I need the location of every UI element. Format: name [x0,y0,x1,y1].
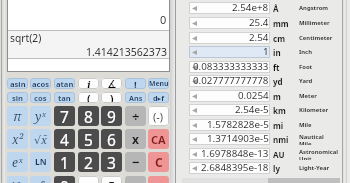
staticText: 1 [60,152,69,172]
button[interactable]: 5 [78,129,99,149]
button[interactable]: 0 [54,176,75,183]
staticText: eˣ [12,154,23,170]
button[interactable]: yˣ [30,106,51,126]
button[interactable]: 1.3714903e-5 [189,133,270,145]
button[interactable]: acos [30,78,51,89]
button[interactable]: (-) [148,106,169,126]
button[interactable]: x [125,129,146,149]
button[interactable]: ÷ [125,106,146,126]
button[interactable]: 4 [54,129,75,149]
button[interactable]: π [7,106,28,126]
button[interactable]: i [78,78,99,89]
staticText: Foot [299,63,313,71]
button[interactable]: 3 [101,152,122,172]
button[interactable]: eˣ [7,152,28,172]
button[interactable]: 2.6848395e-18 [189,162,270,174]
staticText: atan [56,79,74,89]
staticText: ÷ [132,107,140,125]
button[interactable]: 9 [101,106,122,126]
button[interactable]: 1.6978848e-13 [189,148,270,160]
staticText: 0.0254 [238,89,269,101]
button[interactable]: 1 [54,152,75,172]
staticText: 25.4 [249,16,269,28]
button[interactable]: 1 [189,46,270,58]
staticText: √x̅ [34,132,48,147]
button[interactable]: + [125,176,146,183]
staticText: i [87,78,91,89]
button[interactable]: 2.54e-5 [189,104,270,116]
button[interactable]: ∡ [101,78,122,89]
staticText: AU [273,149,285,160]
button[interactable]: Menu [148,78,169,89]
staticText: ly [273,163,280,174]
button[interactable]: = [148,176,169,183]
button[interactable]: . [78,176,99,183]
button[interactable]: 7 [54,106,75,126]
button[interactable]: 1.5782828e-5 [189,119,270,131]
button[interactable]: d▸f [148,92,169,103]
button[interactable]: 0.0254 [189,90,270,102]
button[interactable]: 2 [78,152,99,172]
staticText: E [108,178,115,183]
staticText: 1.3714903e-5 [207,132,269,144]
staticText: x² [12,131,24,147]
staticText: 7 [60,106,69,126]
staticText: cos [34,93,47,103]
button[interactable]: 25.4 [189,17,270,29]
staticText: 6 [107,129,116,149]
staticText: Mile [299,121,312,129]
staticText: Astronomical Unit [299,148,339,160]
button[interactable]: C [148,152,169,172]
button[interactable]: 2.54e+8 [189,2,270,14]
staticText: 2.54 [249,31,269,43]
button[interactable]: 8 [78,106,99,126]
staticText: 9 [107,106,116,126]
button[interactable]: Ans [125,92,146,103]
staticText: tan [58,93,71,103]
button[interactable]: LN [30,152,51,172]
staticText: in [273,47,281,58]
button[interactable]: 0.083333333333 [189,61,270,73]
staticText: Yard [299,77,313,85]
staticText: 2.54e-5 [235,103,269,115]
staticText: π [13,107,22,125]
staticText: CA [151,132,166,147]
button[interactable]: cos [30,92,51,103]
button[interactable]: ! [125,78,146,89]
staticText: 5 [84,129,93,149]
staticText: 1.5782828e-5 [207,118,269,130]
staticText: sin [12,93,24,103]
staticText: Kilometer [299,106,329,114]
staticText: Å [273,3,279,14]
button[interactable]: sin [7,92,28,103]
button[interactable]: √x̅ [30,129,51,149]
staticText: 0 [160,12,167,27]
button[interactable]: f [30,176,51,183]
button[interactable]: E [101,176,122,183]
button[interactable]: 2.54 [189,32,270,44]
staticText: acos [32,79,50,89]
button[interactable]: ) [101,92,122,103]
staticText: C [155,154,163,170]
button[interactable]: − [125,152,146,172]
staticText: 0 [60,176,69,183]
staticText: asin [10,79,26,89]
staticText: Light-Year [299,164,330,172]
staticText: yˣ [35,108,46,124]
staticText: ( [87,92,91,103]
button[interactable]: ( [78,92,99,103]
button[interactable]: 10ˣ [7,176,28,183]
button[interactable]: 0.027777777778 [189,75,270,87]
button[interactable]: 6 [101,129,122,149]
staticText: 1.414213562373 [86,45,167,59]
button[interactable]: x² [7,129,28,149]
button[interactable]: atan [54,78,75,89]
staticText: ft [273,62,280,73]
staticText: 4 [60,129,69,149]
button[interactable]: CA [148,129,169,149]
button[interactable]: asin [7,78,28,89]
staticText: − [132,153,140,171]
button[interactable]: tan [54,92,75,103]
staticText: 2.54e+8 [232,1,269,13]
